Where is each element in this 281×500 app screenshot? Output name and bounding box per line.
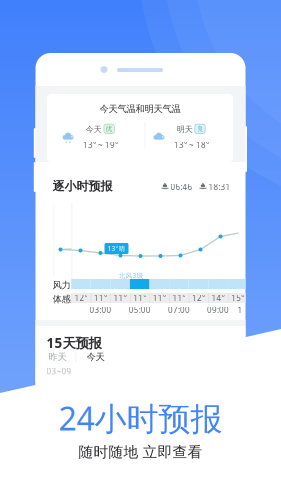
staticText: 今天 [86, 124, 102, 134]
staticText: 12° [74, 293, 87, 303]
staticText: 06:46 [170, 181, 192, 192]
staticText: 13° ~ 18° [174, 139, 209, 150]
staticText: 11° [133, 293, 146, 303]
staticText: 今天气温和明天气温 [99, 103, 180, 115]
staticText: 昨天 [48, 351, 66, 363]
staticText: 今天 [86, 351, 104, 363]
staticText: 11° [153, 293, 166, 303]
staticText: 13° ~ 19° [83, 139, 118, 150]
staticText: 03~09 [46, 366, 71, 377]
staticText: 体感 [52, 293, 70, 305]
staticText: 1 [237, 305, 242, 316]
staticText: 03:00 [89, 305, 111, 315]
staticText: 09:00 [207, 305, 229, 315]
staticText: 随时随地 立即查看 [78, 443, 202, 461]
staticText: 明天 [177, 124, 193, 134]
staticText: 05:00 [129, 305, 151, 315]
staticText: 18:31 [208, 181, 230, 192]
staticText: 24小时预报 [58, 397, 222, 439]
button[interactable]: 昨天 [41, 350, 73, 364]
staticText: 11° [172, 293, 185, 303]
staticText: 北风3级 [118, 271, 143, 280]
staticText: 07:00 [168, 305, 190, 315]
staticText: 14° [212, 293, 225, 303]
staticText: 优 [106, 125, 113, 133]
button[interactable]: 今天 [79, 350, 111, 364]
staticText: 12° [192, 293, 205, 303]
staticText: 15天预报 [46, 334, 101, 352]
staticText: 11° [114, 293, 127, 303]
staticText: 13°晴 [107, 244, 125, 253]
staticText: 15° [231, 293, 244, 303]
staticText: 风力 [52, 279, 70, 291]
staticText: 11° [94, 293, 107, 303]
staticText: 逐小时预报 [52, 179, 112, 194]
staticText: 良 [196, 125, 203, 133]
